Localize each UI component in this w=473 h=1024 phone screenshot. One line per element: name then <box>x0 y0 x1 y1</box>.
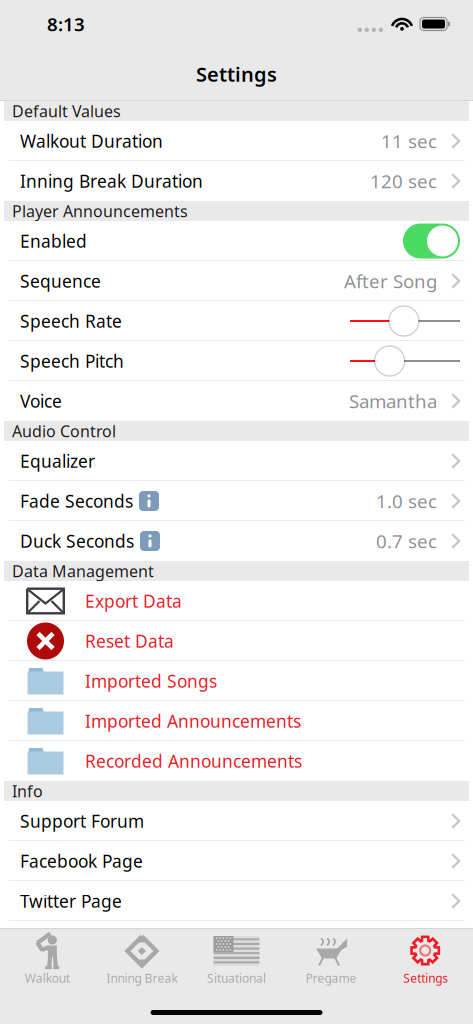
staticText: Info <box>12 780 43 802</box>
staticText: Support Forum <box>20 809 144 832</box>
button[interactable]: Twitter Page <box>0 881 473 921</box>
button[interactable]: Imported Announcements <box>0 701 473 741</box>
staticText: Fade Seconds <box>20 489 133 512</box>
button[interactable]: Duck Seconds <box>0 521 473 561</box>
staticText: 0.7 sec <box>376 529 437 553</box>
button[interactable]: Settings <box>378 929 473 1024</box>
button[interactable]: Inning Break <box>95 929 189 1024</box>
button[interactable]: Sequence <box>0 261 473 301</box>
staticText: Data Management <box>12 560 154 582</box>
staticText: Enabled <box>20 229 87 252</box>
staticText: After Song <box>344 269 437 293</box>
staticText: Sequence <box>20 269 101 292</box>
button[interactable]: Reset Data <box>0 621 473 661</box>
staticText: Audio Control <box>12 420 116 442</box>
staticText: Voice <box>20 389 62 412</box>
staticText: 1.0 sec <box>376 489 437 513</box>
button[interactable]: Voice <box>0 381 473 421</box>
staticText: Twitter Page <box>20 889 122 912</box>
staticText: Equalizer <box>20 449 95 472</box>
button[interactable]: Facebook Page <box>0 841 473 881</box>
staticText: Imported Songs <box>85 669 217 692</box>
button[interactable]: Fade Seconds <box>0 481 473 521</box>
staticText: Player Announcements <box>12 200 188 222</box>
staticText: Export Data <box>85 589 182 612</box>
staticText: Facebook Page <box>20 849 143 872</box>
staticText: 11 sec <box>381 129 437 153</box>
staticText: Settings <box>196 61 277 87</box>
staticText: Inning Break Duration <box>20 169 203 192</box>
staticText: Recorded Announcements <box>85 749 302 772</box>
staticText: 120 sec <box>370 169 437 193</box>
staticText: Duck Seconds <box>20 529 134 552</box>
button[interactable]: Walkout <box>0 929 95 1024</box>
button[interactable]: Inning Break Duration <box>0 161 473 201</box>
button[interactable]: Walkout Duration <box>0 121 473 161</box>
button[interactable]: Recorded Announcements <box>0 741 473 781</box>
staticText: Imported Announcements <box>85 709 301 732</box>
staticText: Samantha <box>349 389 437 413</box>
button[interactable]: Export Data <box>0 581 473 621</box>
staticText: 8:13 <box>47 12 85 36</box>
staticText: Speech Rate <box>20 309 122 332</box>
button[interactable]: Situational <box>189 929 284 1024</box>
staticText: Default Values <box>12 100 121 122</box>
staticText: Situational <box>207 970 266 986</box>
staticText: Walkout <box>25 970 70 986</box>
staticText: Settings <box>403 970 448 986</box>
staticText: Walkout Duration <box>20 129 163 152</box>
staticText: Pregame <box>306 970 357 986</box>
button[interactable]: Equalizer <box>0 441 473 481</box>
button[interactable]: Imported Songs <box>0 661 473 701</box>
button[interactable]: Support Forum <box>0 801 473 841</box>
staticText: Reset Data <box>85 629 174 652</box>
staticText: Inning Break <box>106 970 177 986</box>
button[interactable]: Enabled toggle <box>403 223 460 258</box>
staticText: Speech Pitch <box>20 349 124 372</box>
button[interactable]: Pregame <box>284 929 378 1024</box>
